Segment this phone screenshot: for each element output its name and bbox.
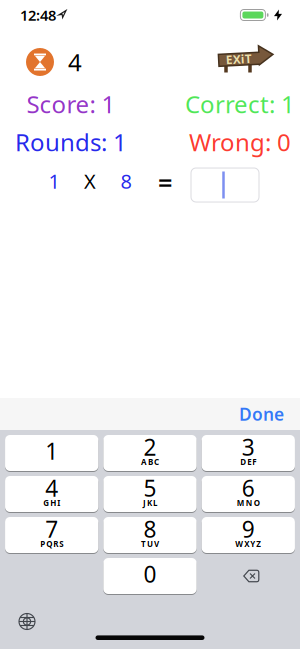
button[interactable]: Done (239, 402, 284, 425)
button[interactable]: 5 (103, 476, 197, 512)
button[interactable]: 7 (5, 517, 98, 553)
staticText: Correct: 1 (185, 88, 295, 120)
staticText: 8 (120, 168, 131, 194)
staticText: Wrong: 0 (189, 126, 291, 158)
button[interactable]: 0 (103, 558, 197, 594)
staticText: 1 (48, 168, 59, 194)
staticText: 5 (143, 473, 156, 503)
staticText: A B C (141, 457, 159, 467)
staticText: J K L (143, 498, 157, 508)
staticText: T U V (141, 539, 159, 549)
button[interactable]: 1 (5, 435, 98, 471)
staticText: W X Y Z (235, 539, 261, 549)
staticText: 4 (45, 473, 58, 503)
staticText: M N O (237, 498, 260, 508)
staticText: G H I (43, 498, 60, 508)
staticText: Done (239, 402, 284, 425)
staticText: 4 (68, 46, 82, 78)
staticText: 8 (143, 514, 156, 544)
staticText: 3 (242, 432, 255, 462)
staticText: 12:48 (20, 5, 56, 25)
staticText: D E F (240, 457, 256, 467)
button[interactable]: 8 (103, 517, 197, 553)
button[interactable]: 2 (103, 435, 197, 471)
button[interactable]: 4 (5, 476, 98, 512)
staticText: 9 (242, 514, 255, 544)
staticText: Score: 1 (26, 88, 115, 120)
staticText: P Q R S (40, 539, 63, 549)
staticText: 6 (242, 473, 255, 503)
button[interactable]: 3 (202, 435, 295, 471)
staticText: Rounds: 1 (15, 126, 127, 158)
staticText: 0 (143, 559, 156, 589)
button[interactable]: EXiT (218, 46, 275, 73)
staticText: 2 (143, 432, 156, 462)
staticText: 1 (45, 436, 58, 466)
button[interactable]: 4 (26, 46, 82, 78)
button[interactable] (202, 558, 295, 594)
button[interactable]: 9 (202, 517, 295, 553)
button[interactable] (19, 613, 35, 629)
staticText: X (84, 168, 96, 194)
staticText: = (158, 165, 172, 199)
staticText: 7 (45, 514, 58, 544)
button[interactable]: 6 (202, 476, 295, 512)
staticText: EXiT (225, 51, 251, 66)
